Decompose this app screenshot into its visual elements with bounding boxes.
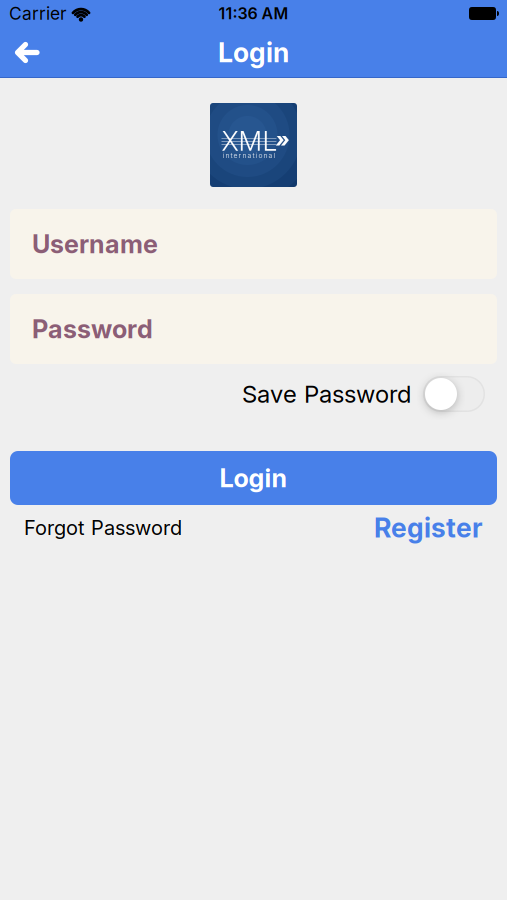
staticText: 11:36 AM: [218, 4, 288, 23]
textField[interactable]: Username: [10, 209, 497, 279]
staticText: Save Password: [242, 380, 411, 408]
staticText: Carrier: [9, 3, 67, 24]
button[interactable]: Forgot Password: [24, 516, 182, 539]
secureTextField[interactable]: Password: [10, 294, 497, 364]
staticText: Register: [374, 512, 483, 543]
button[interactable]: Save Password: [423, 376, 485, 412]
staticText: Login: [218, 37, 289, 68]
button[interactable]: Login: [10, 451, 497, 505]
button[interactable]: Back: [0, 27, 51, 77]
staticText: Username: [32, 229, 158, 259]
staticText: international: [222, 152, 275, 159]
staticText: Password: [32, 314, 153, 344]
staticText: XML: [221, 125, 277, 157]
staticText: Forgot Password: [24, 516, 182, 539]
staticText: Login: [219, 463, 287, 493]
staticText: »: [275, 126, 290, 153]
button[interactable]: Register: [374, 512, 483, 543]
